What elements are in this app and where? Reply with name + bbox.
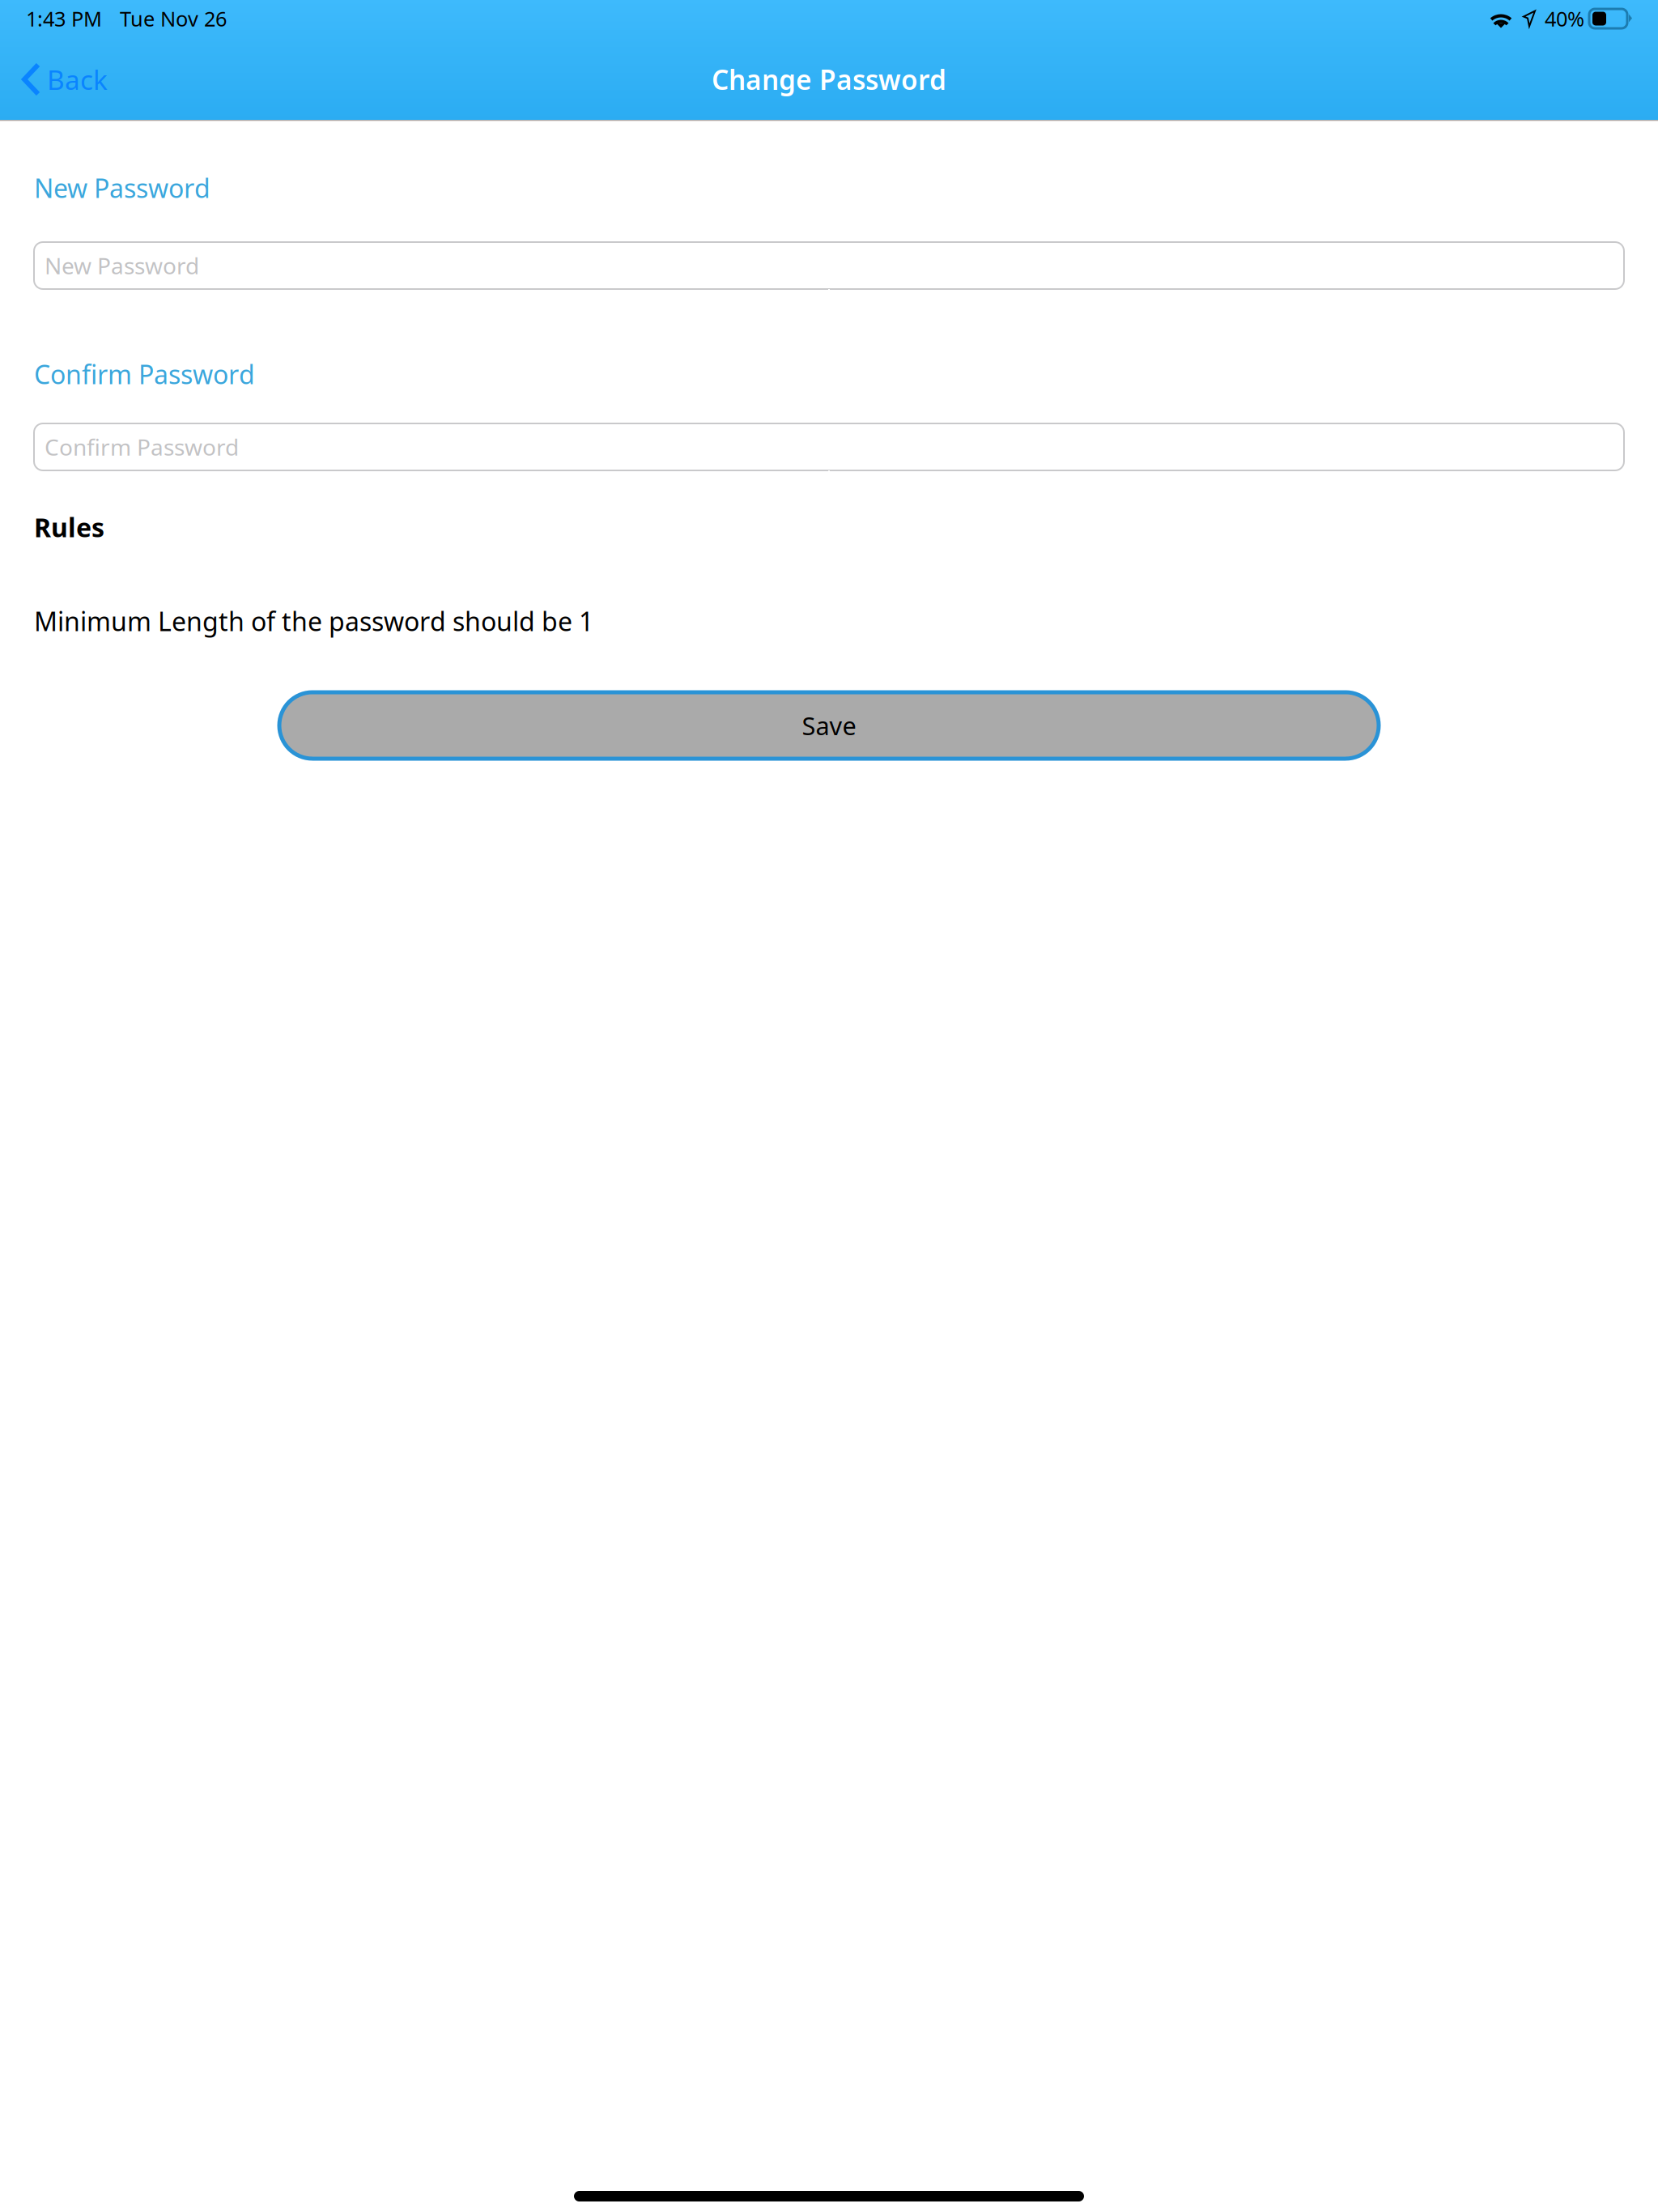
staticText: 1:43 PM — [26, 5, 102, 32]
staticText: Confirm Password — [45, 432, 239, 462]
staticText: Back — [47, 61, 108, 97]
staticText: 40% — [1545, 5, 1584, 32]
staticText: New Password — [45, 251, 199, 281]
button[interactable]: New Password — [34, 242, 1624, 289]
staticText: Save — [802, 709, 856, 742]
staticText: Rules — [34, 510, 104, 544]
staticText: Change Password — [712, 61, 946, 97]
button[interactable]: Confirm Password — [34, 423, 1624, 470]
staticText: Minimum Length of the password should be… — [34, 604, 593, 638]
button[interactable]: Back — [0, 45, 124, 113]
staticText: Tue Nov 26 — [120, 5, 227, 32]
button[interactable]: Save — [279, 692, 1379, 759]
staticText: Confirm Password — [34, 357, 255, 391]
staticText: New Password — [34, 171, 210, 205]
